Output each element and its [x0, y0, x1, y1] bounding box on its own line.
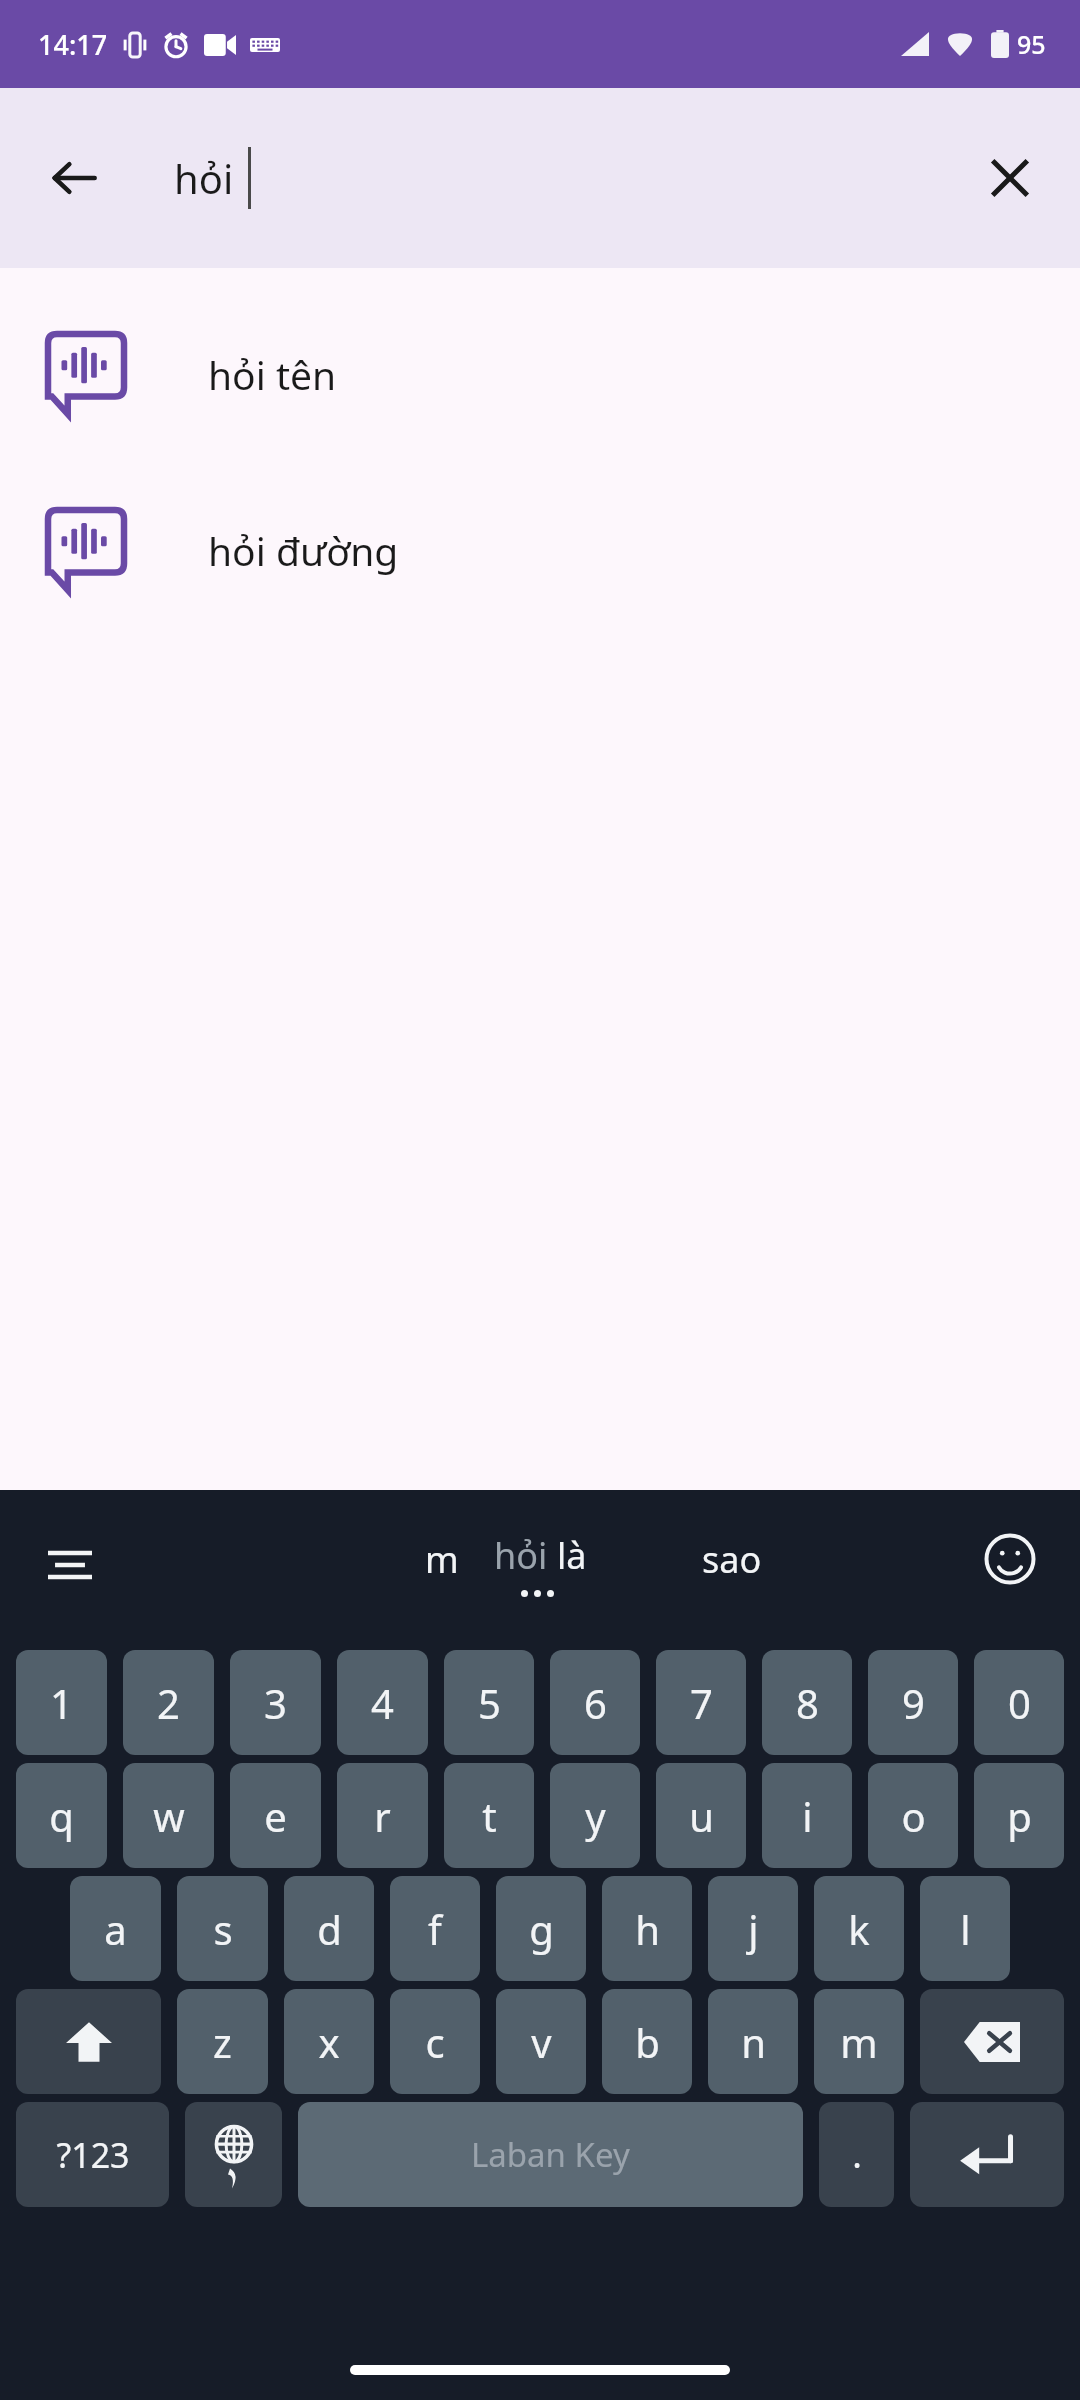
button[interactable]: 2 [123, 1650, 214, 1755]
button[interactable]: z [177, 1989, 268, 2094]
staticText: hỏi tên [208, 348, 337, 401]
button[interactable]: p [974, 1763, 1064, 1868]
button[interactable]: f [390, 1876, 480, 1981]
button[interactable]: r [337, 1763, 428, 1868]
staticText: hỏi [174, 151, 234, 205]
staticText: v [531, 2015, 552, 2069]
staticText: 8 [796, 1676, 819, 1730]
staticText: p [1007, 1789, 1032, 1843]
staticText: h [635, 1902, 660, 1956]
button[interactable]: ?123 [16, 2102, 169, 2207]
staticText: y [585, 1789, 606, 1843]
button[interactable]: d [284, 1876, 374, 1981]
staticText: m [425, 1535, 459, 1584]
button[interactable]: 4 [337, 1650, 428, 1755]
button[interactable]: 3 [230, 1650, 321, 1755]
staticText: s [213, 1902, 233, 1956]
staticText: 3 [264, 1676, 287, 1730]
staticText: 1 [50, 1676, 73, 1730]
button[interactable]: v [496, 1989, 586, 2094]
staticText: 2 [157, 1676, 180, 1730]
staticText: w [153, 1789, 185, 1843]
button[interactable]: e [230, 1763, 321, 1868]
button[interactable]: sao [702, 1535, 762, 1584]
button[interactable]: hỏi [494, 1531, 587, 1580]
staticText: j [748, 1902, 759, 1956]
staticText: 0 [1008, 1676, 1031, 1730]
button[interactable]: t [444, 1763, 534, 1868]
button[interactable]: n [708, 1989, 798, 2094]
button[interactable]: 0 [974, 1650, 1064, 1755]
button[interactable]: 6 [550, 1650, 640, 1755]
button[interactable]: h [602, 1876, 692, 1981]
button[interactable]: Enter [910, 2102, 1064, 2207]
button[interactable]: m [814, 1989, 904, 2094]
button[interactable]: Shift [16, 1989, 161, 2094]
staticText: u [689, 1789, 714, 1843]
button[interactable]: w [123, 1763, 214, 1868]
button[interactable]: y [550, 1763, 640, 1868]
staticText: b [635, 2015, 660, 2069]
button[interactable]: l [920, 1876, 1010, 1981]
button[interactable]: 9 [868, 1650, 958, 1755]
button[interactable]: b [602, 1989, 692, 2094]
staticText: 5 [478, 1676, 501, 1730]
button[interactable]: u [656, 1763, 746, 1868]
staticText: n [741, 2015, 766, 2069]
staticText: l [960, 1902, 971, 1956]
staticText: e [264, 1789, 287, 1843]
staticText: hỏi đường [208, 524, 399, 577]
button[interactable]: o [868, 1763, 958, 1868]
staticText: t [482, 1789, 497, 1843]
button[interactable]: q [16, 1763, 107, 1868]
staticText: 6 [584, 1676, 607, 1730]
button[interactable]: Clear search [968, 136, 1052, 220]
button[interactable]: g [496, 1876, 586, 1981]
staticText: c [425, 2015, 445, 2069]
button[interactable]: Backspace [920, 1989, 1064, 2094]
staticText: 95 [1017, 27, 1046, 61]
button[interactable]: i [762, 1763, 852, 1868]
staticText: . [852, 2130, 862, 2179]
staticText: f [428, 1902, 442, 1956]
button[interactable]: k [814, 1876, 904, 1981]
button[interactable]: a [70, 1876, 161, 1981]
button[interactable]: . [819, 2102, 894, 2207]
staticText: 9 [902, 1676, 925, 1730]
staticText: hỏi [494, 1531, 557, 1580]
staticText: o [901, 1789, 926, 1843]
staticText: i [802, 1789, 813, 1843]
staticText: x [318, 2015, 340, 2069]
button[interactable]: hỏi tên [0, 286, 1080, 462]
button[interactable]: j [708, 1876, 798, 1981]
button[interactable]: 7 [656, 1650, 746, 1755]
button[interactable]: Back [32, 136, 116, 220]
button[interactable]: c [390, 1989, 480, 2094]
staticText: g [529, 1902, 554, 1956]
button[interactable]: m [425, 1535, 459, 1584]
staticText: q [49, 1789, 74, 1843]
button[interactable]: Emoji [968, 1517, 1052, 1601]
staticText: a [104, 1902, 127, 1956]
staticText: d [317, 1902, 342, 1956]
staticText: Laban Key [471, 2132, 630, 2177]
staticText: m [840, 2015, 878, 2069]
button[interactable]: x [284, 1989, 374, 2094]
staticText: z [213, 2015, 232, 2069]
button[interactable]: 1 [16, 1650, 107, 1755]
button[interactable]: 8 [762, 1650, 852, 1755]
button[interactable]: Keyboard menu [28, 1523, 112, 1607]
staticText: sao [702, 1535, 762, 1584]
staticText: ?123 [56, 2132, 130, 2178]
button[interactable]: Laban Key [298, 2102, 803, 2207]
staticText: 4 [371, 1676, 394, 1730]
button[interactable]: Change language [185, 2102, 282, 2207]
staticText: 7 [690, 1676, 713, 1730]
button[interactable]: 5 [444, 1650, 534, 1755]
staticText: k [848, 1902, 870, 1956]
button[interactable]: hỏi đường [0, 462, 1080, 638]
staticText: 14:17 [38, 26, 108, 63]
button[interactable]: s [177, 1876, 268, 1981]
staticText: là [557, 1531, 587, 1580]
staticText: r [374, 1789, 391, 1843]
